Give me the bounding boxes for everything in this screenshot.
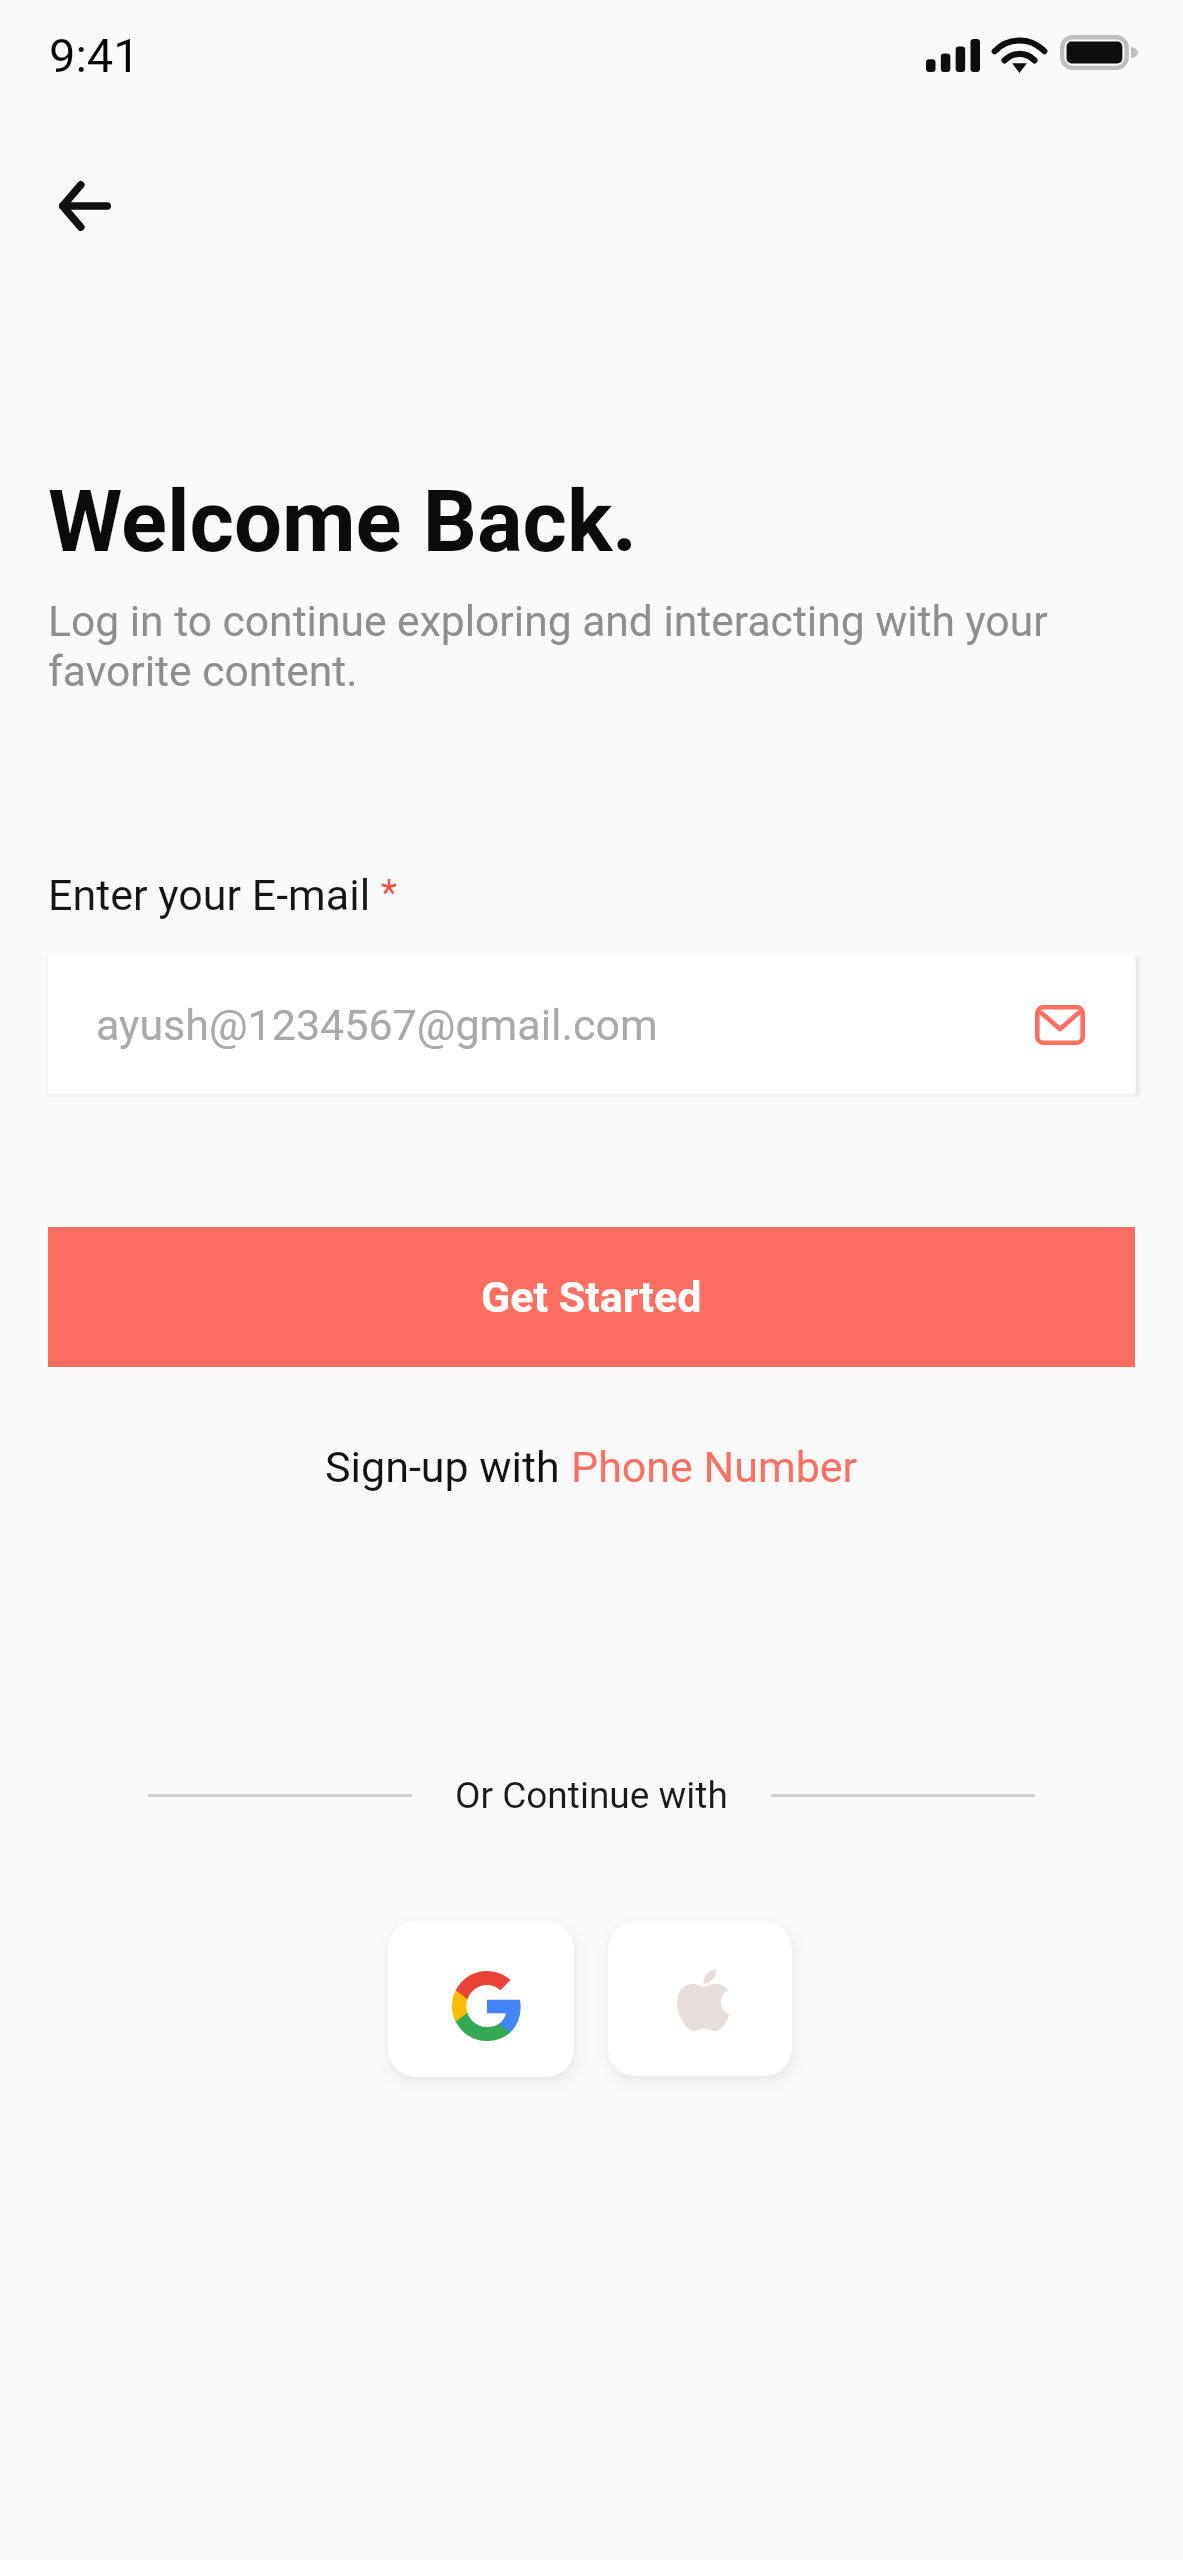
button[interactable]: ayush@1234567@gmail.com [48, 955, 1135, 1094]
button[interactable]: Continue with Google [388, 1921, 574, 2077]
staticText: * [381, 871, 397, 914]
staticText: Log in to continue exploring and interac… [48, 596, 1078, 697]
staticText: Get Started [481, 1272, 702, 1322]
staticText: Phone Number [571, 1442, 858, 1492]
staticText: 9:41 [49, 28, 140, 83]
button[interactable]: Back [43, 165, 127, 247]
button[interactable]: Get Started [48, 1227, 1135, 1367]
button[interactable]: Continue with Apple [608, 1921, 792, 2076]
button[interactable]: Email [1035, 1005, 1085, 1045]
staticText: Sign-up with [325, 1442, 571, 1492]
staticText: Welcome Back. [48, 472, 638, 572]
staticText: ayush@1234567@gmail.com [96, 1000, 658, 1050]
staticText: Or Continue with [455, 1774, 728, 1817]
staticText: Enter your E-mail [48, 870, 381, 920]
button[interactable]: Phone Number [571, 1442, 858, 1492]
